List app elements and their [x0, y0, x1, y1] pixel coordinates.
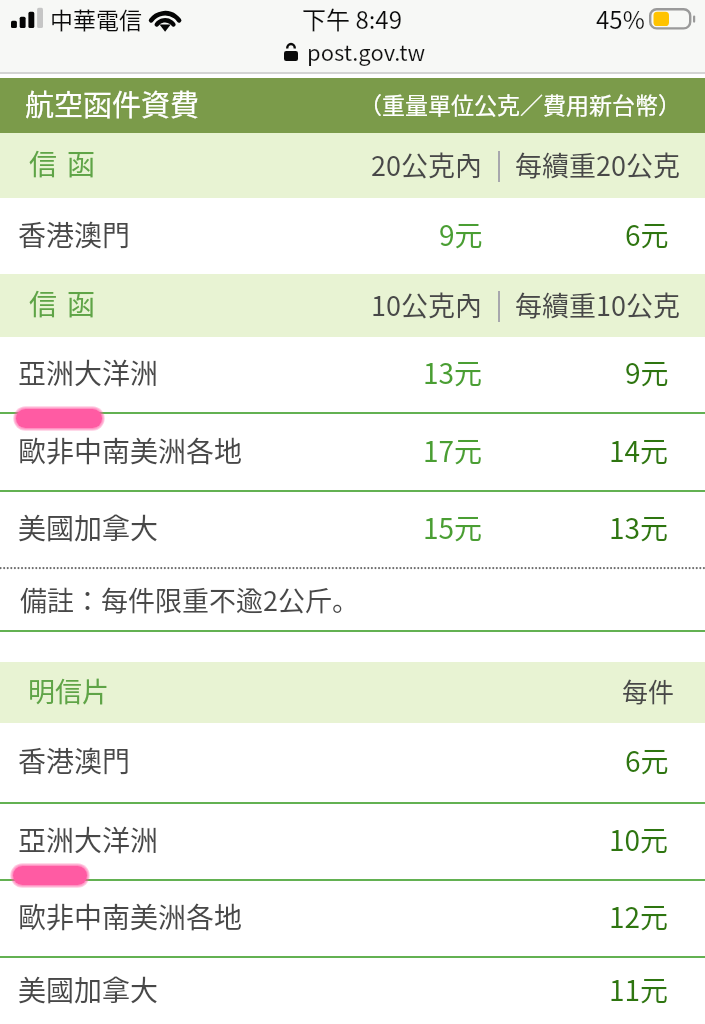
staticText: 每續重10公克 — [515, 285, 680, 324]
staticText: 13元 — [423, 352, 483, 393]
staticText: 函 — [67, 283, 96, 324]
staticText: 13元 — [609, 507, 669, 548]
staticText: 9元 — [625, 352, 669, 393]
staticText: 12元 — [609, 896, 669, 937]
button[interactable]: 美國加拿大 — [0, 492, 705, 567]
staticText: 香港澳門 — [18, 214, 131, 255]
button[interactable]: 亞洲大洋洲 — [0, 337, 705, 412]
staticText: （重量單位公克／費用新台幣） — [359, 87, 681, 120]
button[interactable]: Secure connection — [2, 35, 705, 67]
staticText: 20公克內 — [371, 145, 482, 184]
staticText: 15元 — [423, 507, 483, 548]
staticText: 10元 — [609, 819, 669, 860]
staticText: 9元 — [439, 214, 483, 255]
staticText: 明信片 — [28, 671, 109, 710]
staticText: 11元 — [609, 969, 669, 1010]
other: Secure connection — [284, 39, 298, 63]
other: Battery 45% — [649, 8, 697, 32]
staticText: 函 — [67, 143, 96, 184]
staticText: 航空函件資費 — [25, 82, 200, 124]
button[interactable]: 香港澳門 — [0, 723, 705, 802]
staticText: 下午 8:49 — [302, 1, 403, 36]
other: Cellular signal — [11, 5, 47, 29]
staticText: 6元 — [625, 740, 669, 781]
staticText: 信 — [29, 143, 58, 184]
staticText: 亞洲大洋洲 — [18, 819, 159, 860]
staticText: 信 — [29, 283, 58, 324]
staticText: post.gov.tw — [307, 35, 426, 67]
button[interactable]: 信 — [0, 133, 705, 198]
button[interactable]: 美國加拿大 — [0, 958, 705, 1024]
button[interactable]: 歐非中南美洲各地 — [0, 414, 705, 490]
staticText: 中華電信 — [50, 2, 142, 35]
staticText: 美國加拿大 — [18, 969, 159, 1010]
button[interactable]: 信 — [0, 274, 705, 337]
staticText: 10公克內 — [371, 285, 482, 324]
staticText: 45% — [596, 1, 645, 36]
button[interactable]: 航空函件資費 — [0, 78, 705, 133]
staticText: 美國加拿大 — [18, 507, 159, 548]
other: Wi-Fi — [151, 2, 181, 32]
button[interactable]: 歐非中南美洲各地 — [0, 881, 705, 956]
staticText: 14元 — [609, 430, 669, 471]
staticText: 歐非中南美洲各地 — [18, 896, 243, 937]
staticText: 備註：每件限重不逾2公斤。 — [20, 580, 359, 619]
staticText: 歐非中南美洲各地 — [18, 430, 243, 471]
staticText: 亞洲大洋洲 — [18, 352, 159, 393]
button[interactable]: 香港澳門 — [0, 198, 705, 274]
staticText: 17元 — [423, 430, 483, 471]
staticText: 6元 — [625, 214, 669, 255]
staticText: 每續重20公克 — [515, 145, 680, 184]
staticText: 每件 — [622, 672, 675, 710]
staticText: 香港澳門 — [18, 740, 131, 781]
button[interactable]: 明信片 — [0, 662, 705, 723]
button[interactable]: 亞洲大洋洲 — [0, 804, 705, 879]
